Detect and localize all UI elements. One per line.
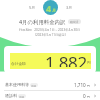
staticText: 円 [86,84,91,88]
staticText: 円 [86,95,91,99]
button[interactable]: 4 [43,0,58,15]
staticText: 3月 [66,5,73,10]
staticText: 利用期間 2023年4月1日～2023年4月30日 [19,28,81,32]
button[interactable]: Previous month [22,0,42,15]
staticText: 月 [52,8,56,13]
staticText: 詳細 [31,84,37,87]
button[interactable]: 通話料 [0,91,100,100]
staticText: (2023年5月11日確定) [35,33,66,37]
staticText: 1,882 [45,51,87,67]
staticText: 詳細 [19,95,25,98]
staticText: 円 [87,61,91,66]
staticText: 4月の利用料金内訳 [19,18,66,25]
staticText: 確定済 [70,20,79,24]
button[interactable]: 確定済 [68,19,81,24]
staticText: 0 [83,93,86,99]
staticText: 4 [46,2,52,14]
staticText: 5月 [29,5,36,10]
button[interactable]: 基本使用料等 [0,79,100,90]
staticText: 基本使用料等 [5,82,29,87]
staticText: 合計金額 [11,61,26,66]
staticText: 通話料 [5,93,17,98]
button[interactable]: Next month [59,0,79,15]
staticText: 1,710 [74,82,86,88]
